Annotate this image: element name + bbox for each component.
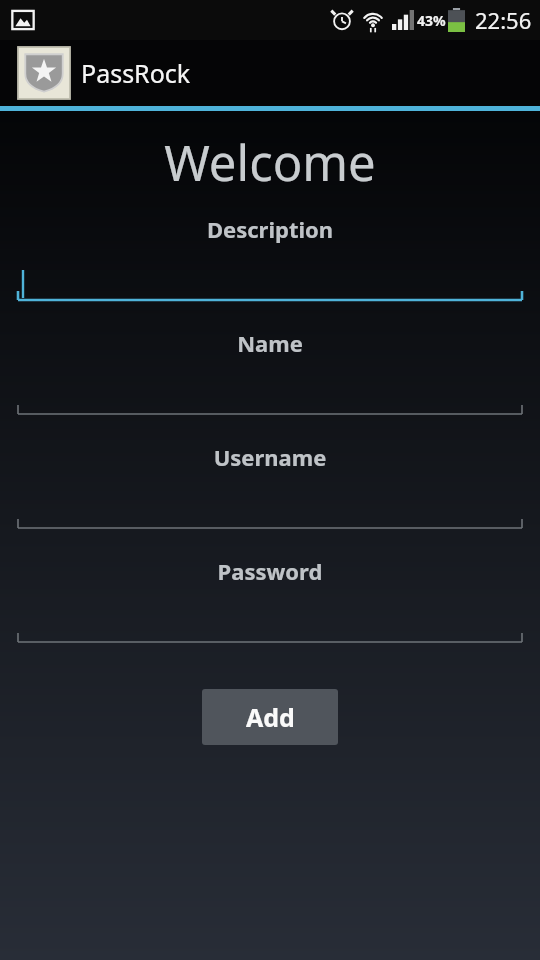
staticText: Add [246,700,295,734]
button[interactable]: Add [202,689,338,745]
staticText: Description [0,214,540,244]
staticText: Name [0,328,540,358]
button[interactable] [0,358,540,442]
staticText: PassRock [81,56,191,90]
staticText: Welcome [0,129,540,196]
staticText: Password [0,556,540,586]
staticText: Username [0,442,540,472]
staticText: 22:56 [475,5,532,35]
button[interactable] [0,586,540,670]
button[interactable] [0,244,540,328]
staticText: 43% [417,11,446,30]
button[interactable] [0,472,540,556]
